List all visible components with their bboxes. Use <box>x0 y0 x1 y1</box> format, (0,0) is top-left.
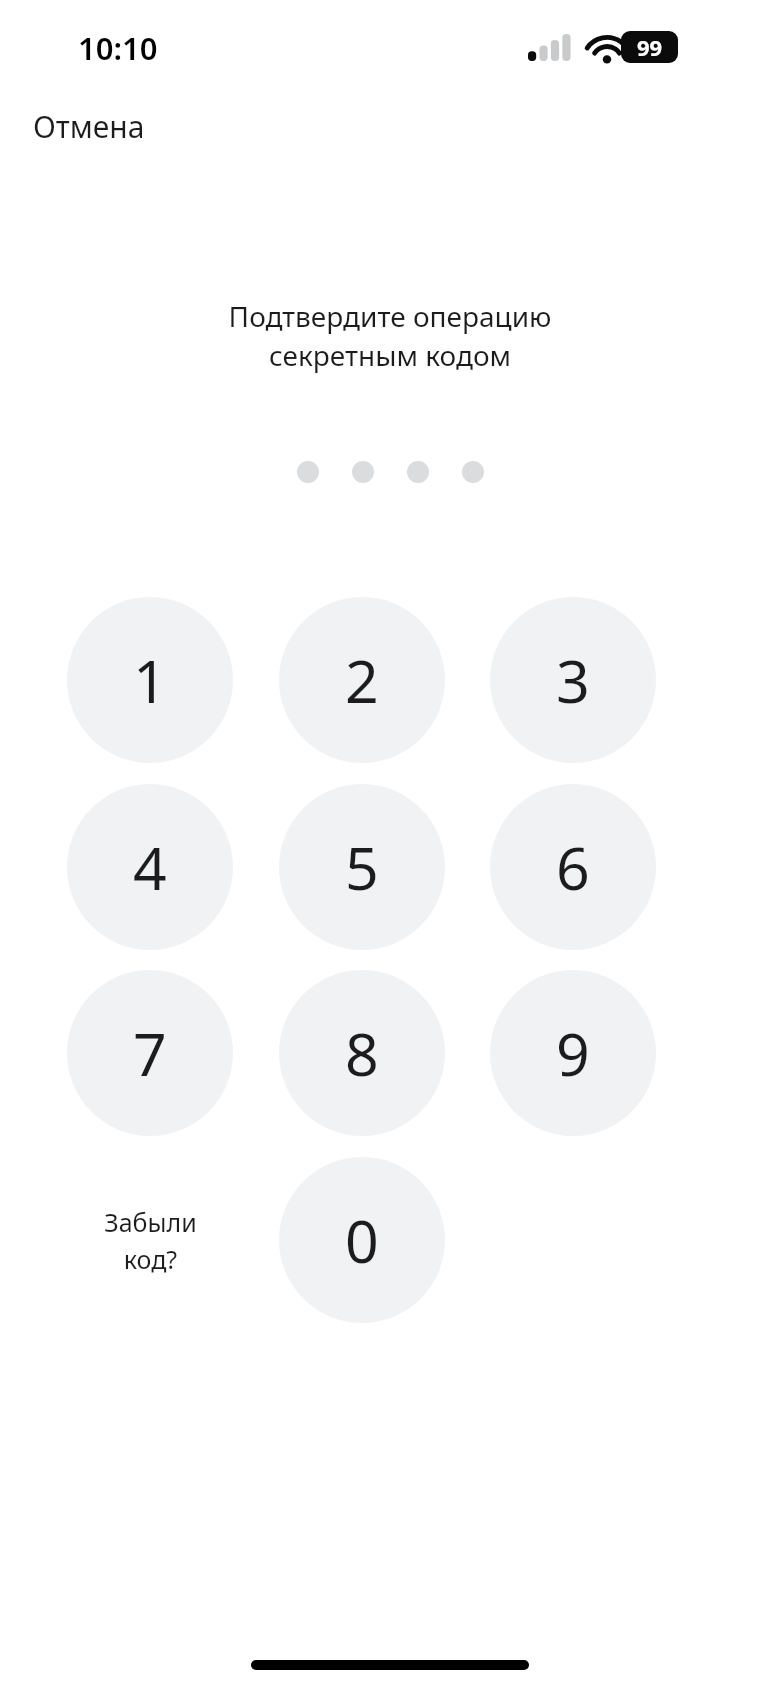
other: Wi-Fi <box>586 33 628 63</box>
staticText: 99 <box>637 32 663 62</box>
button[interactable]: 5 <box>279 784 445 950</box>
staticText: 6 <box>556 827 590 907</box>
staticText: 0 <box>345 1200 379 1280</box>
staticText: 1 <box>133 640 167 720</box>
staticText: Отмена <box>33 106 145 147</box>
staticText: 4 <box>133 827 167 907</box>
staticText: 10:10 <box>78 27 158 69</box>
button[interactable]: 4 <box>67 784 233 950</box>
staticText: 8 <box>345 1013 379 1093</box>
staticText: 5 <box>345 827 379 907</box>
button[interactable]: 1 <box>67 597 233 763</box>
button[interactable]: 7 <box>67 970 233 1136</box>
button[interactable]: 6 <box>490 784 656 950</box>
staticText: Подтвердите операцию секретным кодом <box>50 297 730 374</box>
button[interactable]: 0 <box>279 1157 445 1323</box>
staticText: 9 <box>556 1013 590 1093</box>
staticText: Забыли код? <box>104 1205 197 1276</box>
button[interactable]: 2 <box>279 597 445 763</box>
button[interactable]: 8 <box>279 970 445 1136</box>
button[interactable]: Отмена <box>13 97 165 156</box>
staticText: 2 <box>345 640 379 720</box>
button[interactable]: 3 <box>490 597 656 763</box>
staticText: 7 <box>133 1013 167 1093</box>
button[interactable]: 9 <box>490 970 656 1136</box>
staticText: 3 <box>556 640 590 720</box>
button[interactable]: Забыли код? <box>67 1157 233 1323</box>
